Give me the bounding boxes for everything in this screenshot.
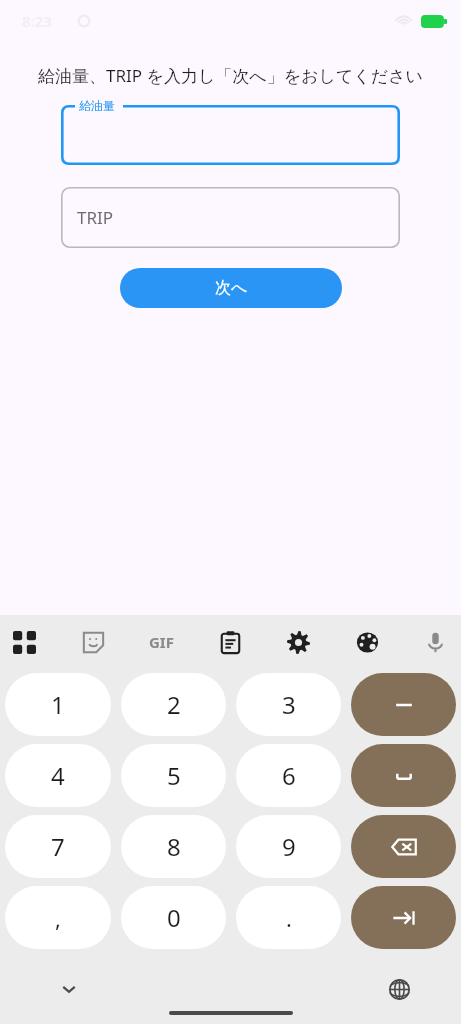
button[interactable]: Themes [345,620,389,664]
staticText: 次へ [215,278,248,298]
staticText: 6 [282,759,296,792]
button[interactable]: TRIP [61,187,400,248]
button[interactable]: 給油量 [61,105,400,165]
staticText: 給油量、TRIP を入力し「次へ」をおしてください [16,64,445,87]
staticText: 5 [167,759,181,792]
button[interactable]: 次へ [120,268,342,308]
button[interactable]: 9 [236,815,341,878]
button[interactable]: Minus [351,673,456,736]
button[interactable]: GIF [139,620,183,664]
staticText: 7 [51,830,65,863]
staticText: 8 [167,830,181,863]
button[interactable]: Next field [351,886,456,949]
button[interactable]: 3 [236,673,341,736]
button[interactable]: , [5,886,111,949]
button[interactable]: 2 [121,673,226,736]
staticText: 給油量 [79,98,115,113]
staticText: TRIP [77,206,114,229]
staticText: 3 [282,688,296,721]
button[interactable]: Stickers [71,620,115,664]
staticText: 1 [51,688,65,721]
button[interactable]: Settings [276,620,320,664]
button[interactable]: Hide keyboard [47,967,91,1011]
staticText: 9 [282,830,296,863]
button[interactable]: Apps [2,620,46,664]
button[interactable]: Space [351,744,456,807]
button[interactable]: . [236,886,341,949]
staticText: GIF [149,632,174,652]
button[interactable]: 7 [5,815,111,878]
staticText: , [55,903,61,933]
button[interactable]: 4 [5,744,111,807]
button[interactable]: 8 [121,815,226,878]
button[interactable]: 5 [121,744,226,807]
staticText: 2 [167,688,181,721]
button[interactable]: Change language [377,967,421,1011]
staticText: 0 [167,901,181,934]
button[interactable]: 6 [236,744,341,807]
button[interactable]: Backspace [351,815,456,878]
button[interactable]: 0 [121,886,226,949]
button[interactable]: 1 [5,673,111,736]
staticText: . [286,903,292,933]
button[interactable]: Voice input [413,620,457,664]
staticText: 4 [51,759,65,792]
staticText: 8:23 [22,11,52,31]
button[interactable]: Clipboard [208,620,252,664]
